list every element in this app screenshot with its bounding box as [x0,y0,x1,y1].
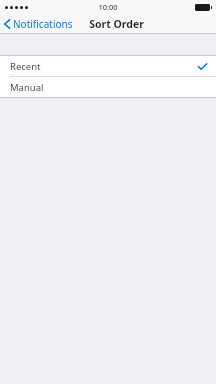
other: Back [4,19,10,29]
staticText: Manual [10,81,44,94]
button[interactable]: Recent [0,56,216,76]
staticText: Notifications [13,17,73,31]
staticText: 10:00 [98,2,118,12]
button[interactable]: Manual [0,77,216,97]
staticText: Sort Order [89,17,144,31]
staticText: Recent [10,60,41,73]
button[interactable]: Back [0,15,79,33]
